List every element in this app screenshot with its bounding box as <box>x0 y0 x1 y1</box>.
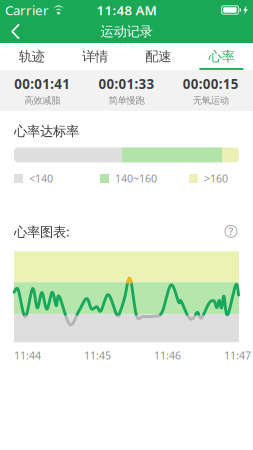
staticText: 00:00:15 <box>183 75 239 93</box>
staticText: ? <box>228 224 233 238</box>
staticText: 心率达标率 <box>14 123 79 139</box>
staticText: 11:48 AM <box>96 1 156 19</box>
staticText: 00:01:41 <box>14 75 70 93</box>
staticText: 140~160 <box>115 171 157 186</box>
staticText: 轨迹 <box>19 48 45 65</box>
staticText: 00:01:33 <box>98 75 154 93</box>
staticText: 简单慢跑 <box>108 95 144 106</box>
staticText: 运动记录 <box>100 23 152 40</box>
staticText: <140 <box>29 171 53 186</box>
button[interactable]: Help <box>223 223 239 239</box>
staticText: 11:45 <box>84 348 111 362</box>
staticText: 心率图表: <box>14 222 70 240</box>
button[interactable]: 详情 <box>63 43 126 70</box>
staticText: 11:47 <box>224 348 251 362</box>
staticText: 详情 <box>82 48 108 65</box>
staticText: 配速 <box>145 48 171 65</box>
button[interactable]: Back <box>0 20 34 43</box>
staticText: 11:44 <box>14 348 41 362</box>
staticText: 无氧运动 <box>193 95 229 106</box>
staticText: 11:46 <box>154 348 181 362</box>
staticText: 心率 <box>208 48 234 65</box>
staticText: 高效减脂 <box>24 95 60 106</box>
button[interactable]: 心率 <box>190 43 253 70</box>
staticText: >160 <box>204 171 228 186</box>
button[interactable]: 配速 <box>126 43 190 70</box>
button[interactable]: 轨迹 <box>0 43 63 70</box>
staticText: Carrier <box>5 1 49 19</box>
